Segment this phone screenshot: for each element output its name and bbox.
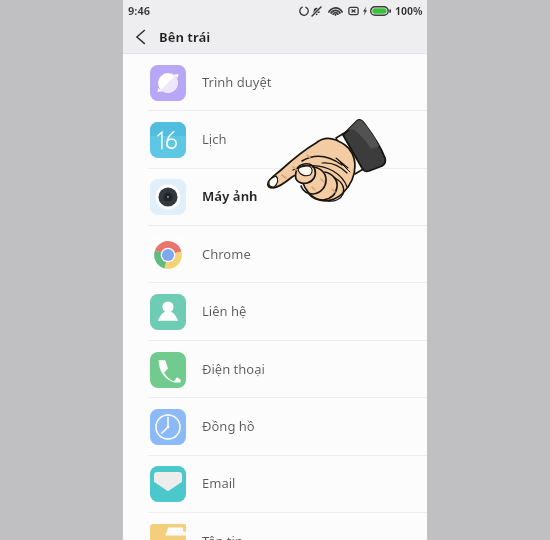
button[interactable]: Đồng hồ xyxy=(123,398,427,455)
staticText: Email xyxy=(202,474,236,492)
staticText: Bên trái xyxy=(159,28,211,46)
button[interactable]: Back xyxy=(125,22,155,52)
staticText: Chrome xyxy=(202,245,251,263)
button[interactable]: Email xyxy=(123,455,427,512)
button[interactable]: Trình duyệt xyxy=(123,54,427,111)
button[interactable]: Máy ảnh xyxy=(123,168,427,225)
button[interactable]: Chrome xyxy=(123,226,427,283)
button[interactable]: Tập tin xyxy=(123,513,427,540)
button[interactable]: Lịch xyxy=(123,111,427,168)
button[interactable]: Điện thoại xyxy=(123,341,427,398)
staticText: 100% xyxy=(395,4,423,18)
staticText: Trình duyệt xyxy=(202,73,272,91)
staticText: Đồng hồ xyxy=(202,417,255,435)
staticText: Liên hệ xyxy=(202,302,247,320)
staticText: Lịch xyxy=(202,130,227,148)
staticText: 9:46 xyxy=(128,3,150,18)
staticText: Máy ảnh xyxy=(202,187,258,205)
staticText: Tập tin xyxy=(202,532,243,540)
staticText: Điện thoại xyxy=(202,360,265,378)
button[interactable]: Liên hệ xyxy=(123,283,427,340)
